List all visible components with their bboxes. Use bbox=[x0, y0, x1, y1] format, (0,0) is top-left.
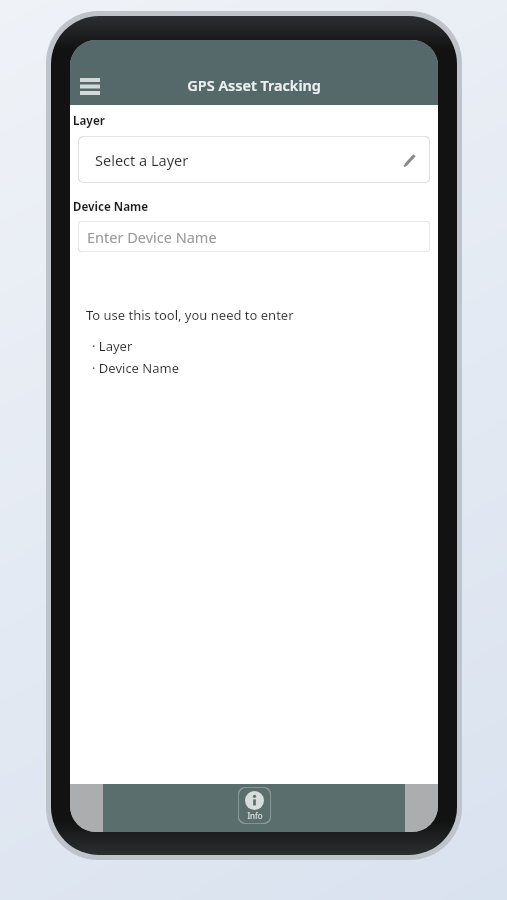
staticText: Device Name bbox=[73, 199, 149, 215]
staticText: · Device Name bbox=[92, 359, 179, 377]
button[interactable]: Open navigation menu bbox=[73, 69, 107, 103]
other: Edit layer bbox=[400, 150, 420, 170]
staticText: Enter Device Name bbox=[87, 227, 217, 247]
staticText: · Layer bbox=[92, 337, 133, 355]
button[interactable]: Select a Layer bbox=[78, 136, 430, 183]
button[interactable]: Info bbox=[238, 787, 271, 824]
staticText: Layer bbox=[73, 113, 105, 129]
button[interactable]: Enter Device Name bbox=[78, 221, 430, 252]
staticText: GPS Asset Tracking bbox=[70, 75, 438, 95]
staticText: Select a Layer bbox=[95, 150, 189, 170]
staticText: To use this tool, you need to enter bbox=[86, 306, 294, 324]
staticText: Info bbox=[247, 810, 263, 821]
